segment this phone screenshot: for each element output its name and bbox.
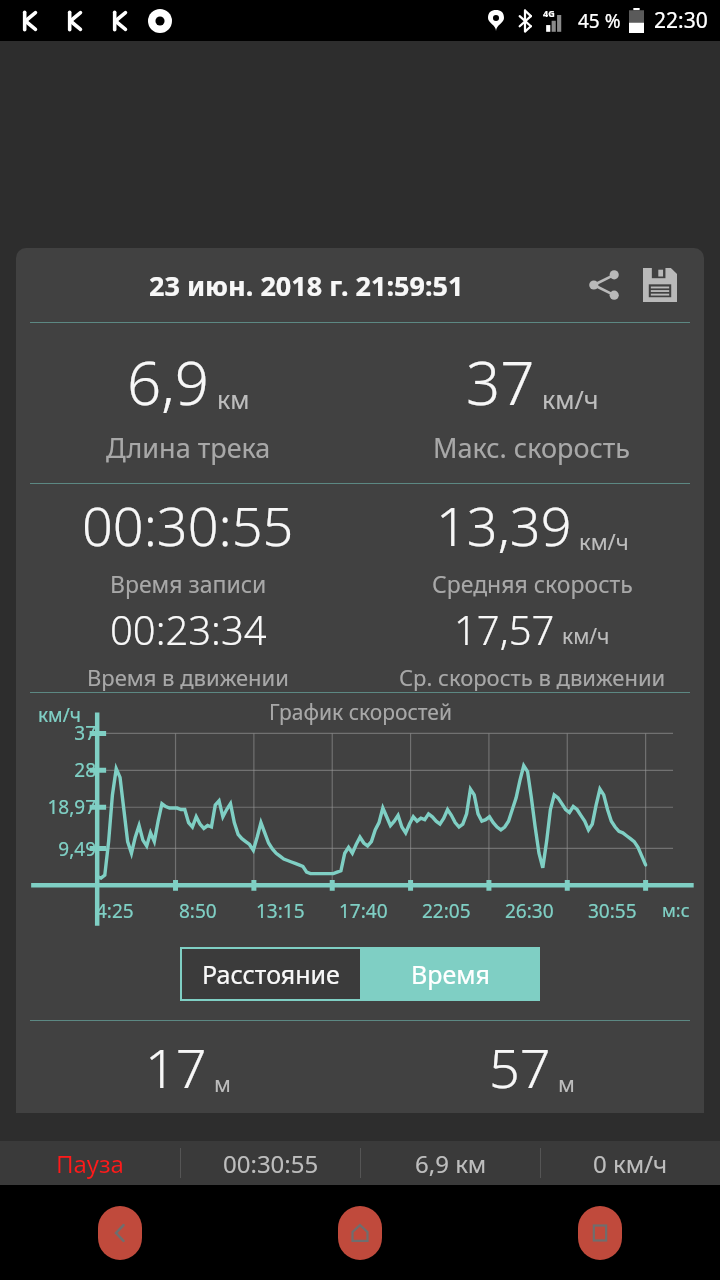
staticText: Ср. скорость в движении <box>399 662 666 692</box>
staticText: 37 <box>466 341 535 423</box>
staticText: 22:30 <box>654 6 708 35</box>
button[interactable]: Назад <box>98 1206 142 1260</box>
staticText: 13:15 <box>256 898 305 924</box>
staticText: км/ч <box>562 622 610 651</box>
staticText: 23 июн. 2018 г. 21:59:51 <box>149 267 464 304</box>
staticText: 4G <box>543 7 555 19</box>
button[interactable]: 00:30:55 <box>181 1141 360 1185</box>
staticText: 30:55 <box>588 898 637 924</box>
button[interactable]: 6,9 км <box>361 1141 540 1185</box>
staticText: График скоростей <box>269 698 452 727</box>
staticText: 0 км/ч <box>593 1147 668 1180</box>
button[interactable]: Расстояние <box>182 949 360 999</box>
button[interactable]: Главный экран <box>338 1206 382 1260</box>
button[interactable]: Сохранить <box>634 259 686 311</box>
staticText: 00:30:55 <box>223 1147 319 1180</box>
staticText: 22:05 <box>422 898 471 924</box>
staticText: м <box>558 1068 575 1098</box>
staticText: 6,9 <box>127 341 210 423</box>
staticText: Длина трека <box>106 429 271 466</box>
staticText: 17,57 <box>454 602 555 656</box>
staticText: 37 <box>20 720 96 746</box>
button[interactable]: 0 км/ч <box>541 1141 720 1185</box>
staticText: 17 <box>145 1030 207 1104</box>
staticText: Расстояние <box>202 957 340 991</box>
staticText: 45 % <box>578 8 621 34</box>
staticText: 18,97 <box>20 794 96 820</box>
button[interactable]: Время <box>360 947 540 1001</box>
staticText: м:с <box>662 898 690 923</box>
staticText: 28 <box>20 757 96 783</box>
staticText: 00:30:55 <box>82 488 294 562</box>
staticText: 26:30 <box>505 898 554 924</box>
button[interactable]: Пауза <box>0 1141 180 1185</box>
staticText: 9,49 <box>20 836 96 862</box>
staticText: 8:50 <box>179 898 217 924</box>
staticText: км/ч <box>579 526 629 556</box>
staticText: 57 <box>489 1030 551 1104</box>
button[interactable]: Недавние приложения <box>578 1206 622 1260</box>
staticText: км/ч <box>38 702 81 728</box>
staticText: 6,9 км <box>415 1147 487 1180</box>
staticText: Средняя скорость <box>432 568 633 599</box>
staticText: Время в движении <box>87 662 289 692</box>
staticText: км <box>217 382 250 416</box>
staticText: км/ч <box>542 382 599 416</box>
staticText: Пауза <box>56 1147 124 1180</box>
button[interactable]: Поделиться <box>578 259 630 311</box>
staticText: 4:25 <box>96 898 134 924</box>
staticText: 13,39 <box>436 488 572 562</box>
staticText: м <box>214 1068 231 1098</box>
staticText: Время записи <box>110 568 267 599</box>
staticText: Время <box>411 957 490 991</box>
staticText: 17:40 <box>339 898 388 924</box>
staticText: Макс. скорость <box>433 429 631 466</box>
staticText: 00:23:34 <box>110 602 267 656</box>
